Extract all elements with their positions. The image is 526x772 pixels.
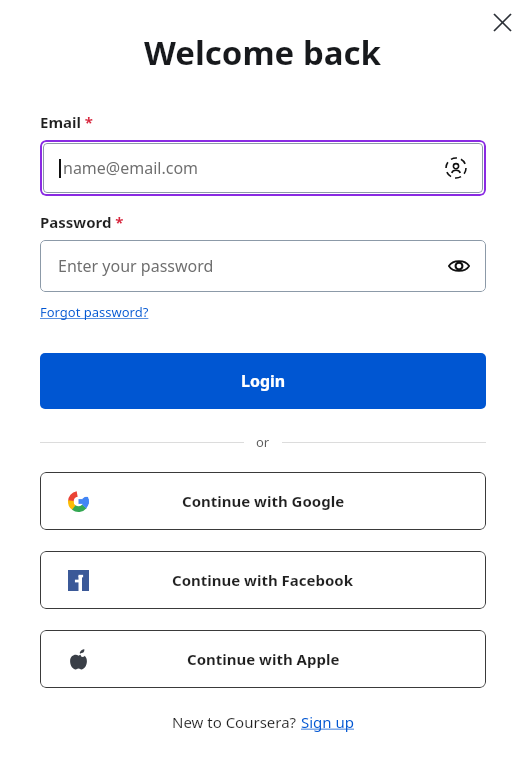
button[interactable]: Continue with Apple: [40, 630, 486, 688]
button[interactable]: Login: [40, 353, 486, 409]
button[interactable]: Close: [484, 4, 520, 40]
button[interactable]: Forgot password?: [40, 303, 149, 321]
button[interactable]: Sign up: [301, 712, 354, 732]
staticText: Password *: [40, 212, 124, 232]
button[interactable]: Continue with Facebook: [40, 551, 486, 609]
staticText: Continue with Google: [182, 491, 345, 511]
button[interactable]: Show password: [446, 253, 472, 279]
staticText: Email *: [40, 112, 93, 132]
staticText: New to Coursera?: [172, 712, 301, 732]
button[interactable]: name@email.com: [43, 143, 483, 193]
button[interactable]: Enter your password: [40, 240, 486, 292]
staticText: Welcome back: [144, 30, 382, 75]
staticText: or: [256, 433, 270, 451]
staticText: Continue with Apple: [187, 649, 340, 669]
staticText: Enter your password: [58, 255, 214, 277]
staticText: Sign up: [301, 712, 354, 732]
button[interactable]: Use saved account: [443, 155, 469, 181]
button[interactable]: Continue with Google: [40, 472, 486, 530]
staticText: Login: [241, 370, 286, 392]
staticText: Forgot password?: [40, 303, 149, 321]
staticText: name@email.com: [63, 157, 199, 179]
staticText: Continue with Facebook: [172, 570, 354, 590]
